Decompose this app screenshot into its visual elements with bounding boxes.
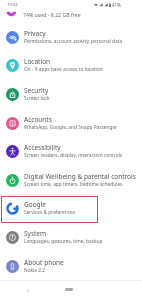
staticText: System bbox=[24, 229, 47, 238]
button[interactable]: Security bbox=[0, 80, 142, 109]
staticText: Permissions, account activity, personal … bbox=[24, 38, 123, 45]
staticText: Languages, gestures, time, backup bbox=[24, 238, 103, 245]
button[interactable]: System bbox=[0, 223, 142, 252]
button[interactable]: About phone bbox=[0, 252, 142, 281]
button[interactable]: Google bbox=[0, 194, 142, 223]
staticText: 15:54 bbox=[7, 2, 18, 8]
staticText: Services & preferences bbox=[24, 209, 76, 216]
staticText: 74% used - 8.22 GB free bbox=[23, 11, 81, 18]
staticText: 41% bbox=[112, 2, 121, 8]
staticText: Nokia 2.2 bbox=[24, 267, 46, 274]
button[interactable]: Home bbox=[65, 288, 73, 291]
staticText: Screen lock bbox=[24, 95, 50, 102]
button[interactable]: Back bbox=[22, 285, 33, 296]
staticText: Security bbox=[24, 86, 49, 95]
staticText: Accounts bbox=[24, 115, 52, 124]
staticText: Digital Wellbeing & parental controls bbox=[24, 172, 136, 181]
staticText: On - 9 apps have access to location bbox=[24, 66, 103, 73]
staticText: Screen readers, display, interaction con… bbox=[24, 152, 123, 159]
button[interactable]: Privacy bbox=[0, 23, 142, 52]
staticText: Privacy bbox=[24, 29, 46, 38]
button[interactable]: Digital Wellbeing & parental controls bbox=[0, 166, 142, 195]
button[interactable]: Accounts bbox=[0, 109, 142, 138]
button[interactable]: Accessibility bbox=[0, 137, 142, 166]
staticText: About phone bbox=[24, 258, 64, 267]
staticText: Accessibility bbox=[24, 143, 61, 152]
staticText: WhatsApp, Google, and Snapp Passenger bbox=[24, 124, 118, 131]
staticText: Location bbox=[24, 57, 51, 66]
button[interactable]: Location bbox=[0, 51, 142, 80]
staticText: Google bbox=[24, 200, 46, 209]
staticText: Screen time, app timers, bedtime schedul… bbox=[24, 181, 123, 188]
